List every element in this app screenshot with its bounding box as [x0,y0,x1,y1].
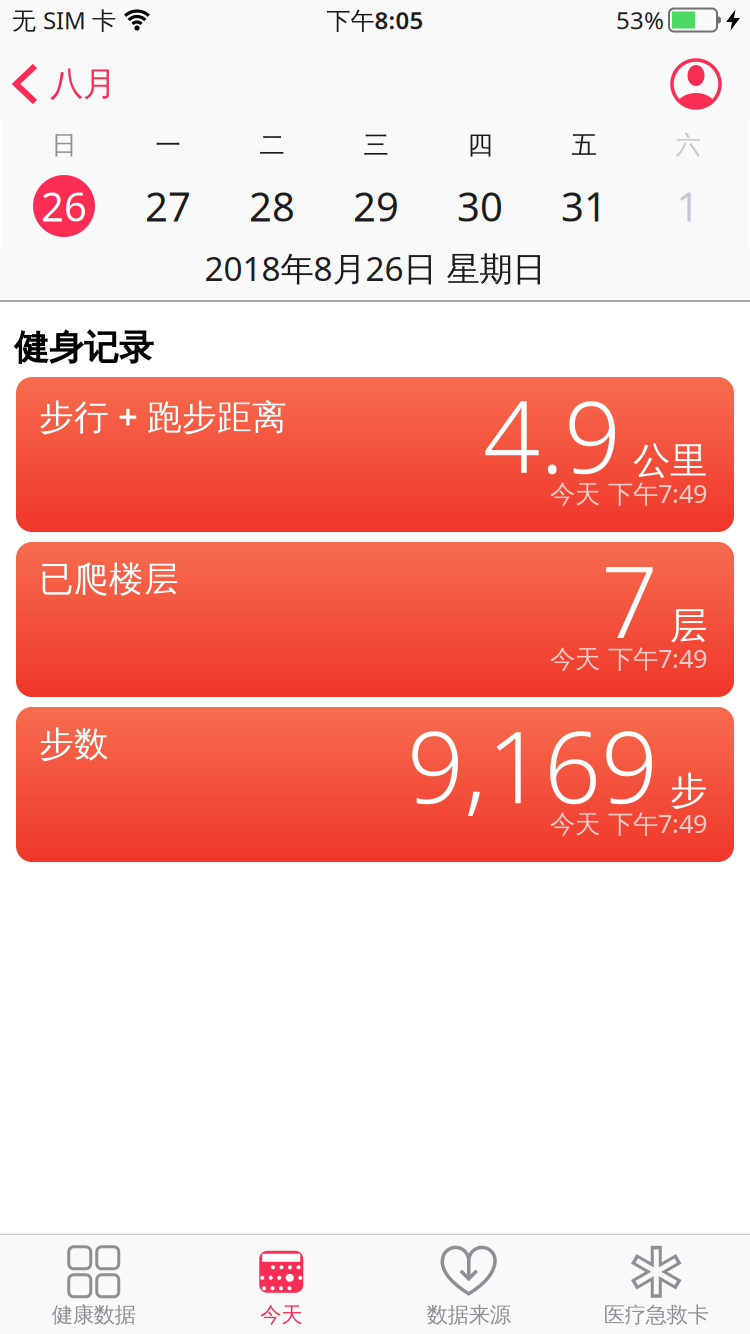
button[interactable]: 步数 [0,707,750,862]
staticText: 已爬楼层 [39,558,179,601]
button[interactable]: 31 [532,164,636,248]
staticText: 日 [51,129,76,160]
staticText: 步数 [39,723,109,766]
staticText: 今天 [260,1302,302,1328]
button[interactable]: 个人资料 [672,60,750,108]
staticText: 7 [601,533,658,666]
staticText: 六 [675,129,700,160]
staticText: 今天 下午7:49 [550,641,707,675]
staticText: 健康数据 [52,1302,136,1328]
button[interactable]: 步行 + 跑步距离 [0,377,750,532]
staticText: 医疗急救卡 [604,1302,709,1328]
staticText: 八月 [50,63,116,104]
staticText: 1 [676,179,699,232]
staticText: 下午8:05 [326,4,423,36]
staticText: 层 [670,603,707,649]
button[interactable]: 今天 [187,1246,375,1328]
button[interactable]: 29 [324,164,428,248]
staticText: 无 SIM 卡 [12,4,116,36]
staticText: 26 [41,179,87,232]
staticText: 53% [616,4,664,36]
button[interactable]: 健康数据 [0,1246,187,1328]
staticText: 31 [561,179,607,232]
staticText: 今天 下午7:49 [550,476,707,510]
button[interactable]: 医疗急救卡 [562,1246,750,1328]
button[interactable]: 八月 [0,63,116,104]
staticText: 五 [571,129,596,160]
staticText: 29 [353,179,399,232]
staticText: 公里 [633,438,707,484]
staticText: 四 [467,129,492,160]
staticText: 数据来源 [427,1302,511,1328]
button[interactable]: 数据来源 [375,1246,562,1328]
staticText: 27 [145,179,191,232]
staticText: 30 [457,179,503,232]
button[interactable]: 30 [428,164,532,248]
button[interactable]: 27 [116,164,220,248]
staticText: 28 [249,179,295,232]
staticText: 步行 + 跑步距离 [39,393,287,439]
button[interactable]: 28 [220,164,324,248]
staticText: 二 [259,129,284,160]
staticText: 4.9 [483,368,621,501]
staticText: 步 [670,768,707,814]
button[interactable]: 已爬楼层 [0,542,750,697]
staticText: 三 [363,129,388,160]
staticText: 今天 下午7:49 [550,806,707,840]
staticText: 一 [155,129,180,160]
button[interactable]: 26 [12,164,116,248]
button[interactable]: 1 [636,164,740,248]
staticText: 9,169 [407,698,658,831]
staticText: 健身记录 [14,326,154,369]
staticText: 2018年8月26日 星期日 [204,246,545,290]
